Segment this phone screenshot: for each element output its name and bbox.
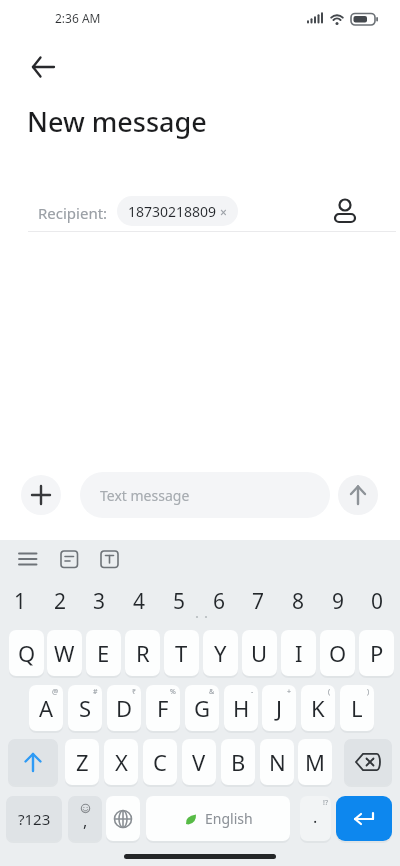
button[interactable]: ?123 xyxy=(6,796,62,841)
button[interactable] xyxy=(8,739,58,785)
staticText: 1 xyxy=(14,587,27,616)
button[interactable]: 7 xyxy=(240,582,276,620)
button[interactable]: Z xyxy=(65,739,99,785)
button[interactable]: , xyxy=(68,796,102,841)
button[interactable]: C xyxy=(143,739,177,785)
button[interactable]: H xyxy=(224,685,258,731)
staticText: # xyxy=(93,687,98,697)
staticText: Q xyxy=(18,638,36,668)
button[interactable]: J xyxy=(262,685,296,731)
button[interactable] xyxy=(22,52,62,82)
staticText: U xyxy=(251,638,268,668)
staticText: O xyxy=(329,638,347,668)
staticText: 7 xyxy=(252,587,265,616)
button[interactable]: 18730218809 xyxy=(117,196,238,226)
button[interactable]: V xyxy=(182,739,216,785)
button[interactable]: M xyxy=(298,739,332,785)
staticText: X xyxy=(115,747,128,777)
staticText: C xyxy=(153,747,167,777)
button[interactable]: 1 xyxy=(2,582,38,620)
staticText: ) xyxy=(367,687,370,697)
button[interactable]: E xyxy=(86,630,121,676)
staticText: P xyxy=(370,638,384,668)
button[interactable]: 4 xyxy=(121,582,157,620)
button[interactable]: F xyxy=(146,685,180,731)
staticText: 0 xyxy=(371,587,384,616)
button[interactable]: 0 xyxy=(359,582,395,620)
button[interactable] xyxy=(13,545,43,573)
staticText: V xyxy=(192,747,206,777)
button[interactable]: 9 xyxy=(320,582,356,620)
button[interactable]: R xyxy=(125,630,160,676)
button[interactable] xyxy=(21,475,61,515)
button[interactable] xyxy=(336,796,392,841)
staticText: + xyxy=(287,687,292,697)
staticText: 2 xyxy=(54,587,67,616)
button[interactable]: W xyxy=(47,630,82,676)
staticText: J xyxy=(276,693,283,723)
staticText: E xyxy=(97,638,110,668)
staticText: 3 xyxy=(93,587,106,616)
button[interactable]: Text message xyxy=(80,472,330,518)
staticText: @ xyxy=(52,687,59,697)
staticText: - xyxy=(251,687,254,697)
button[interactable]: O xyxy=(320,630,355,676)
staticText: 9 xyxy=(332,587,345,616)
staticText: 8 xyxy=(292,587,305,616)
staticText: 5 xyxy=(173,587,186,616)
button[interactable]: 8 xyxy=(280,582,316,620)
button[interactable]: D xyxy=(107,685,141,731)
button[interactable]: U xyxy=(242,630,277,676)
button[interactable]: S xyxy=(68,685,102,731)
button[interactable]: X xyxy=(104,739,138,785)
button[interactable]: I xyxy=(281,630,316,676)
button[interactable] xyxy=(55,545,85,573)
button[interactable]: L xyxy=(340,685,374,731)
staticText: . xyxy=(313,806,318,828)
staticText: F xyxy=(157,693,169,723)
button[interactable]: K xyxy=(301,685,335,731)
staticText: R xyxy=(136,638,150,668)
staticText: Z xyxy=(76,747,89,777)
button[interactable] xyxy=(106,796,140,841)
staticText: Y xyxy=(214,638,227,668)
staticText: G xyxy=(194,693,211,723)
button[interactable]: B xyxy=(221,739,255,785)
button[interactable]: T xyxy=(164,630,199,676)
button[interactable]: 6 xyxy=(201,582,237,620)
staticText: ( xyxy=(328,687,331,697)
staticText: 4 xyxy=(133,587,146,616)
button[interactable]: Q xyxy=(9,630,44,676)
button[interactable]: English xyxy=(146,796,290,841)
button[interactable]: . xyxy=(300,796,331,841)
staticText: 2:36 AM xyxy=(55,10,101,26)
staticText: B xyxy=(231,747,246,777)
button[interactable] xyxy=(344,739,392,785)
staticText: & xyxy=(209,687,215,697)
button[interactable]: 2 xyxy=(42,582,78,620)
staticText: K xyxy=(311,693,325,723)
staticText: I xyxy=(295,638,303,668)
button[interactable]: P xyxy=(359,630,394,676)
staticText: ₹ xyxy=(132,687,137,697)
button[interactable]: 5 xyxy=(161,582,197,620)
button[interactable]: 3 xyxy=(81,582,117,620)
button[interactable] xyxy=(95,545,125,573)
staticText: ?123 xyxy=(18,809,51,829)
staticText: !? xyxy=(323,798,328,808)
staticText: × xyxy=(217,204,227,220)
button[interactable] xyxy=(338,475,378,515)
button[interactable] xyxy=(328,194,362,228)
button[interactable]: Y xyxy=(203,630,238,676)
staticText: English xyxy=(205,809,253,828)
staticText: New message xyxy=(27,103,207,140)
staticText: H xyxy=(233,693,250,723)
button[interactable]: A xyxy=(29,685,63,731)
staticText: W xyxy=(54,638,75,668)
button[interactable]: G xyxy=(185,685,219,731)
staticText: , xyxy=(83,810,88,832)
staticText: 6 xyxy=(213,587,226,616)
button[interactable]: N xyxy=(260,739,294,785)
staticText: Text message xyxy=(100,486,190,505)
staticText: Recipient: xyxy=(38,203,108,223)
